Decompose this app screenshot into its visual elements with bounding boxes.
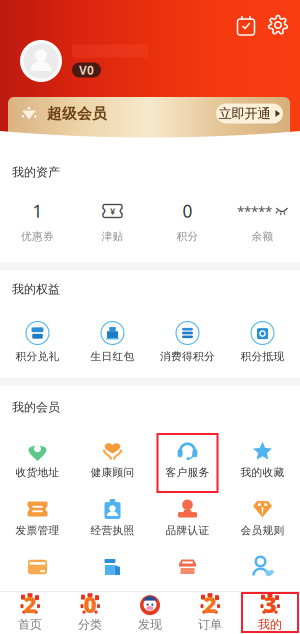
staticText: 收货地址 [15,466,59,479]
staticText: 消费得积分 [160,350,215,363]
staticText: 品牌认证 [165,524,209,537]
staticText: 2 [203,589,216,619]
staticText: 经营执照 [90,524,134,537]
staticText: 余额 [251,230,273,243]
button[interactable]: ¥ [75,198,150,254]
button[interactable]: 积分抵现 [225,317,300,373]
button[interactable]: 客户服务 [150,434,225,492]
button[interactable]: 会员等级 V0 [72,62,101,77]
staticText: 津贴 [101,230,123,243]
staticText: 立即开通 [218,105,270,122]
staticText: 订单 [198,617,222,632]
button[interactable]: 设置 [264,11,292,39]
staticText: 健康顾问 [90,466,134,479]
button[interactable]: 会员规则 [225,492,300,550]
button[interactable]: 用户头像 [20,40,62,82]
staticText: 我的权益 [12,282,60,297]
staticText: 优惠券 [21,230,54,243]
staticText: 1 [32,199,42,222]
button[interactable]: 积分兑礼 [0,317,75,373]
button[interactable]: 1 [0,198,75,254]
button[interactable]: 3 [240,592,300,633]
staticText: 发现 [138,617,162,632]
button[interactable]: 我的药箱 [75,550,150,608]
staticText: 我的会员 [12,400,60,415]
button[interactable]: 签到日历 [232,11,260,39]
staticText: V0 [79,62,94,78]
staticText: 发票管理 [15,524,59,537]
staticText: 我的药箱 [90,582,134,595]
staticText: 首页 [18,617,42,632]
staticText: ¥ [110,205,115,217]
button[interactable]: 发现 [120,592,180,633]
button[interactable]: 附近药店 [150,550,225,608]
button[interactable]: 我的收藏 [225,434,300,492]
staticText: 积分抵现 [240,350,284,363]
button[interactable]: 0 [150,198,225,254]
staticText: 超级会员 [47,104,107,122]
staticText: 我的 [258,617,282,632]
button[interactable]: 健康顾问 [75,434,150,492]
button[interactable]: 0 [60,592,120,633]
button[interactable]: 邀请好友 [225,550,300,608]
button[interactable]: 品牌认证 [150,492,225,550]
button[interactable]: 生日红包 [75,317,150,373]
staticText: 生日红包 [90,350,134,363]
staticText: 我的资产 [12,165,60,180]
button[interactable]: 2 [0,592,60,633]
staticText: 2 [23,589,36,619]
staticText: 0 [182,199,192,222]
staticText: 分类 [78,617,102,632]
staticText: 0 [83,589,96,619]
button[interactable]: 超级会员 [8,97,290,142]
staticText: 积分兑礼 [15,350,59,363]
staticText: 附近药店 [165,582,209,595]
button[interactable]: 消费得积分 [150,317,225,373]
button[interactable]: ***** [225,198,300,254]
staticText: 邀请好友 [240,582,284,595]
staticText: 积分 [176,230,198,243]
button[interactable]: 银行卡 [0,550,75,608]
button[interactable]: 经营执照 [75,492,150,550]
button[interactable]: 2 [180,592,240,633]
staticText: 银行卡 [21,582,54,595]
button[interactable]: 发票管理 [0,492,75,550]
staticText: 我的收藏 [240,466,284,479]
staticText: 客户服务 [165,466,209,479]
button[interactable]: 收货地址 [0,434,75,492]
staticText: ***** [237,202,272,220]
staticText: 会员规则 [240,524,284,537]
staticText: 3 [263,589,276,619]
